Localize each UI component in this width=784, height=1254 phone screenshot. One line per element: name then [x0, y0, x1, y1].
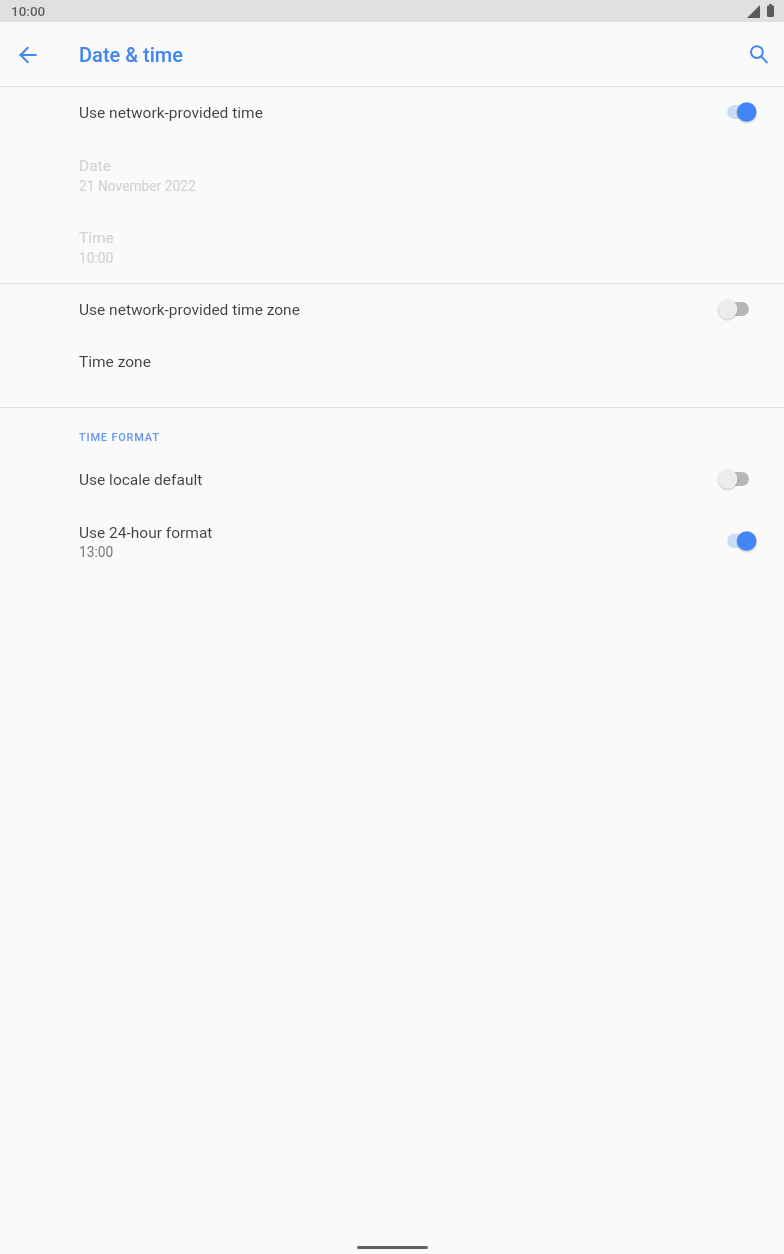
staticText: 13:00: [79, 544, 114, 560]
staticText: Date: [79, 157, 111, 175]
button[interactable]: Use network-provided time: [0, 87, 784, 139]
staticText: Time: [79, 229, 114, 247]
staticText: Date & time: [79, 43, 183, 66]
staticText: Time zone: [79, 353, 151, 371]
staticText: Use network-provided time zone: [79, 301, 718, 319]
staticText: Use locale default: [79, 471, 718, 489]
button[interactable]: Time zone: [0, 336, 784, 388]
staticText: TIME FORMAT: [79, 431, 160, 444]
staticText: Use 24-hour format: [79, 524, 213, 542]
button[interactable]: Use network-provided time zone: [0, 284, 784, 336]
button[interactable]: Use 24-hour format, on: [718, 506, 784, 578]
button[interactable]: Use network-provided time, on: [718, 87, 784, 139]
staticText: 10:00: [11, 3, 46, 19]
button[interactable]: Use locale default: [0, 454, 784, 506]
staticText: 21 November 2022: [79, 178, 196, 194]
button[interactable]: Use network-provided time zone, off: [718, 284, 784, 336]
button[interactable]: Use 24-hour format: [0, 506, 784, 578]
staticText: 10:00: [79, 250, 114, 266]
button[interactable]: Use locale default, off: [718, 454, 784, 506]
button[interactable]: Navigate up: [5, 32, 50, 77]
button[interactable]: Search: [734, 31, 780, 77]
staticText: Use network-provided time: [79, 104, 718, 122]
button[interactable]: Date: [0, 139, 784, 211]
